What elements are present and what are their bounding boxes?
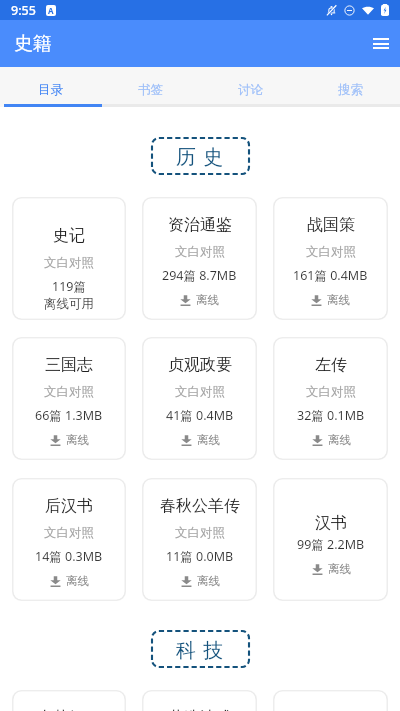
button[interactable]: 历 史 xyxy=(151,137,250,175)
staticText: 离线 xyxy=(196,293,219,307)
staticText: 历 史 xyxy=(176,143,225,170)
button[interactable]: 讨论 xyxy=(200,67,300,107)
staticText: 离线 xyxy=(328,433,351,447)
button[interactable]: 春秋公羊传 xyxy=(142,478,257,601)
staticText: 搜索 xyxy=(338,82,363,98)
button[interactable]: 营造法式 xyxy=(142,690,257,711)
staticText: 讨论 xyxy=(238,82,263,98)
staticText: 119篇 xyxy=(52,278,86,295)
staticText: 文白对照 xyxy=(44,255,94,271)
staticText: 贞观政要 xyxy=(168,355,232,375)
staticText: 文白对照 xyxy=(175,244,225,260)
staticText: 文白对照 xyxy=(175,525,225,541)
staticText: 左传 xyxy=(315,355,347,375)
staticText: 离线 xyxy=(66,433,89,447)
button[interactable]: 史记 xyxy=(12,197,126,320)
button[interactable]: 三国志 xyxy=(12,337,126,460)
button[interactable]: 本草纲目 xyxy=(12,690,126,711)
staticText: 161篇 0.4MB xyxy=(293,267,368,284)
staticText: 汉书 xyxy=(315,513,347,533)
button[interactable]: 汉书 xyxy=(273,478,388,601)
staticText: 文白对照 xyxy=(306,384,356,400)
button[interactable]: 天工开物 xyxy=(273,690,388,711)
staticText: 99篇 2.2MB xyxy=(297,536,365,553)
staticText: 离线可用 xyxy=(44,296,94,312)
staticText: 营造法式 xyxy=(168,708,232,711)
staticText: 11篇 0.0MB xyxy=(166,548,234,565)
staticText: 后汉书 xyxy=(45,496,93,516)
staticText: 离线 xyxy=(66,574,89,588)
button[interactable]: 搜索 xyxy=(300,67,400,107)
button[interactable]: 目录 xyxy=(0,67,100,107)
staticText: 离线 xyxy=(197,433,220,447)
staticText: 文白对照 xyxy=(44,384,94,400)
button[interactable]: 战国策 xyxy=(273,197,388,320)
staticText: 资治通鉴 xyxy=(168,215,232,235)
staticText: 66篇 1.3MB xyxy=(35,407,103,424)
staticText: 9:55 xyxy=(11,2,36,19)
staticText: 文白对照 xyxy=(44,525,94,541)
staticText: 史籍 xyxy=(14,32,52,56)
staticText: 14篇 0.3MB xyxy=(35,548,103,565)
staticText: A xyxy=(48,5,54,16)
button[interactable]: 贞观政要 xyxy=(142,337,257,460)
staticText: 战国策 xyxy=(307,215,355,235)
staticText: 春秋公羊传 xyxy=(160,496,240,516)
staticText: 离线 xyxy=(197,574,220,588)
staticText: 32篇 0.1MB xyxy=(297,407,365,424)
button[interactable]: 科 技 xyxy=(151,630,250,668)
staticText: 文白对照 xyxy=(175,384,225,400)
staticText: 离线 xyxy=(327,293,350,307)
button[interactable]: 资治通鉴 xyxy=(142,197,257,320)
button[interactable]: 左传 xyxy=(273,337,388,460)
button[interactable]: 书签 xyxy=(100,67,200,107)
staticText: 目录 xyxy=(38,82,63,98)
staticText: 294篇 8.7MB xyxy=(162,267,237,284)
staticText: 本草纲目 xyxy=(37,708,101,711)
staticText: 文白对照 xyxy=(306,244,356,260)
staticText: 41篇 0.4MB xyxy=(166,407,234,424)
staticText: 离线 xyxy=(328,562,351,576)
button[interactable]: Menu xyxy=(373,38,400,49)
staticText: 史记 xyxy=(53,226,85,246)
staticText: 三国志 xyxy=(45,355,93,375)
staticText: 科 技 xyxy=(176,636,225,663)
button[interactable]: 后汉书 xyxy=(12,478,126,601)
staticText: 书签 xyxy=(138,82,163,98)
